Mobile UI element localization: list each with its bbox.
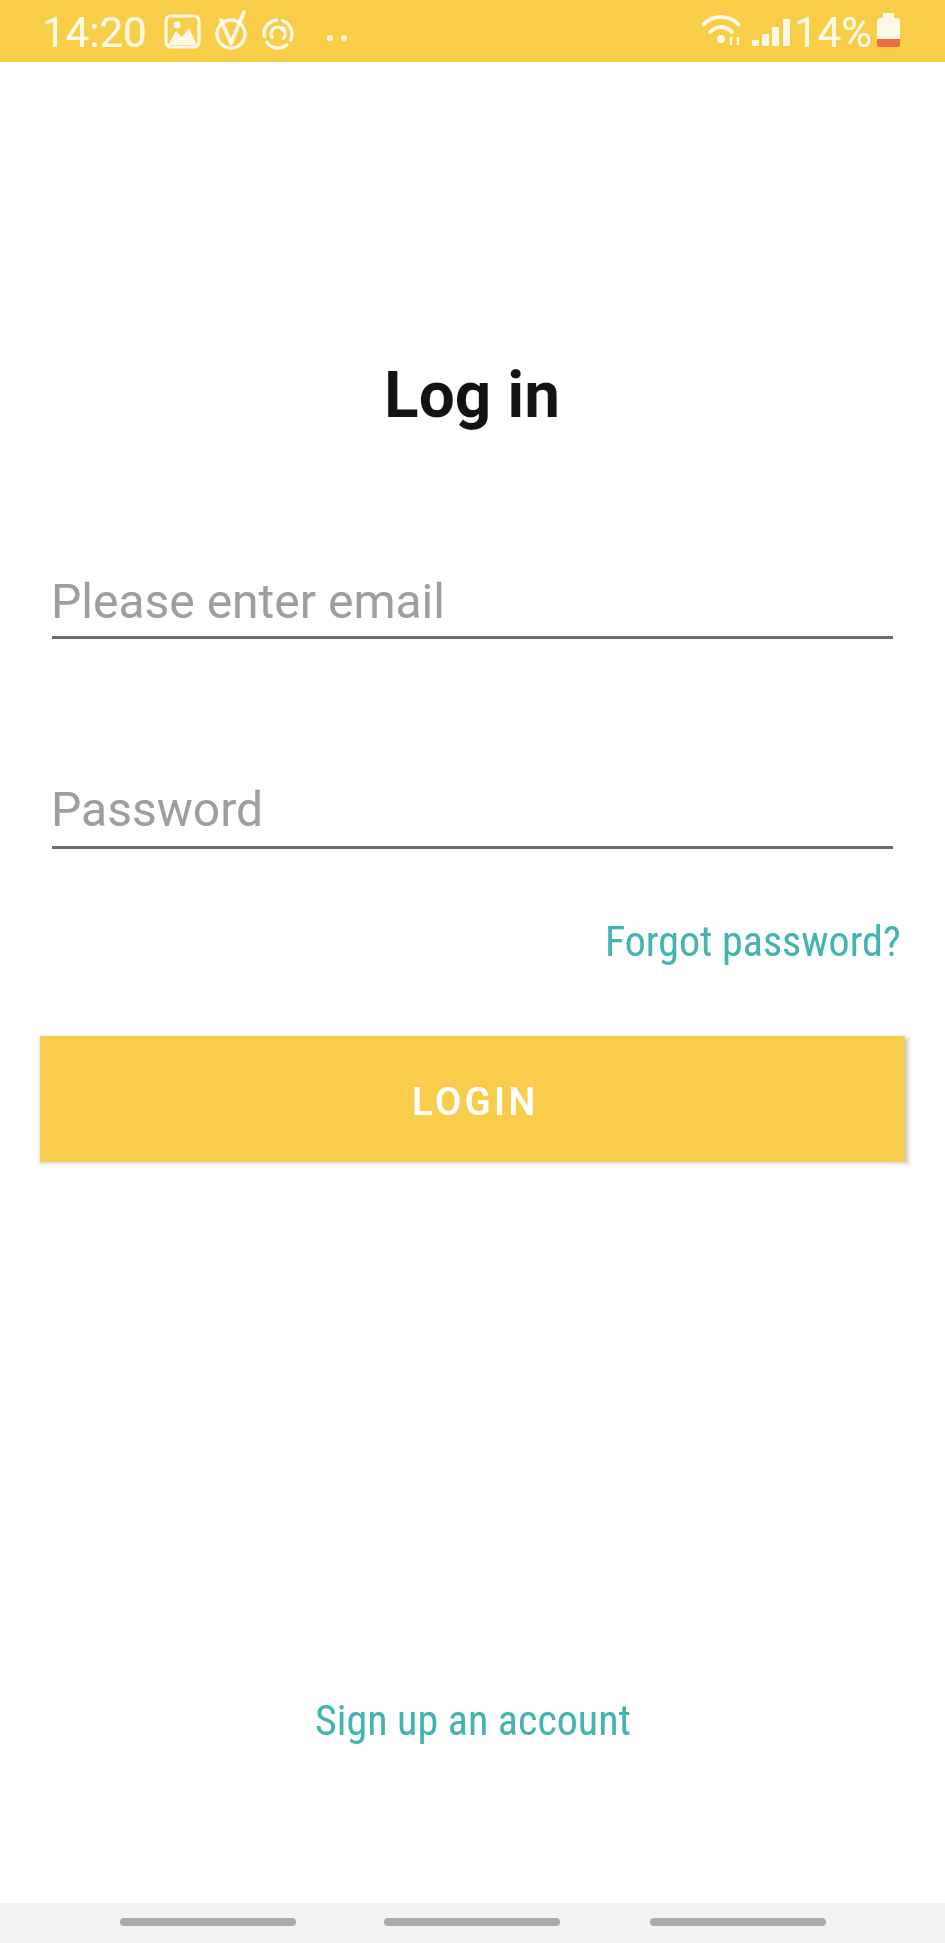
button[interactable]: Sign up an account: [315, 1696, 631, 1745]
button[interactable]: Please enter email: [52, 562, 893, 639]
staticText: Log in: [384, 358, 561, 433]
button[interactable]: [650, 1918, 826, 1926]
staticText: 14%: [794, 8, 872, 57]
button[interactable]: [384, 1918, 560, 1926]
button[interactable]: Password: [52, 770, 893, 849]
staticText: 14:20: [42, 8, 147, 57]
button[interactable]: Forgot password?: [605, 917, 901, 966]
staticText: Forgot password?: [605, 917, 901, 966]
staticText: Sign up an account: [315, 1696, 631, 1745]
button[interactable]: LOGIN: [40, 1036, 905, 1162]
staticText: Please enter email: [51, 573, 445, 629]
button[interactable]: [120, 1918, 296, 1926]
staticText: Password: [51, 781, 264, 837]
staticText: LOGIN: [412, 1080, 539, 1125]
